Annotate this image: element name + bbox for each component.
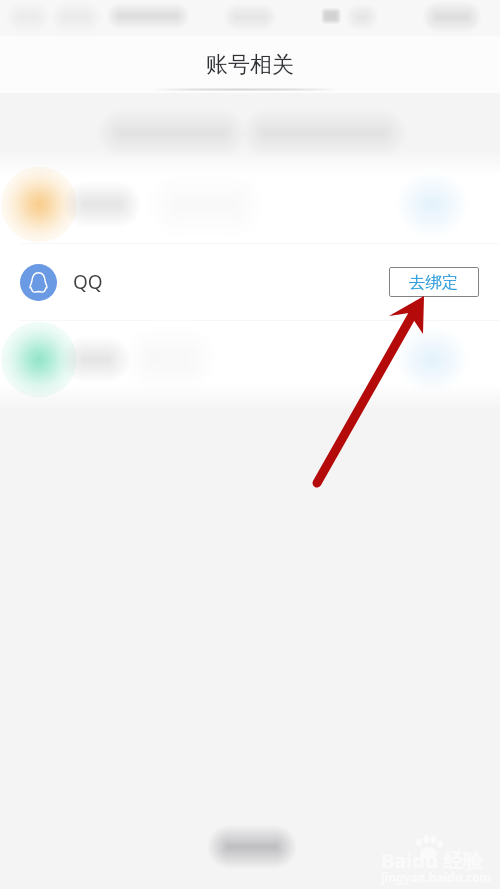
button[interactable]: 去绑定 [389,267,479,297]
staticText: QQ [73,269,103,295]
staticText: 账号相关 [206,51,294,79]
button[interactable] [0,166,500,243]
button[interactable]: QQ [0,244,500,320]
button[interactable] [0,321,500,398]
staticText: 去绑定 [409,272,459,293]
